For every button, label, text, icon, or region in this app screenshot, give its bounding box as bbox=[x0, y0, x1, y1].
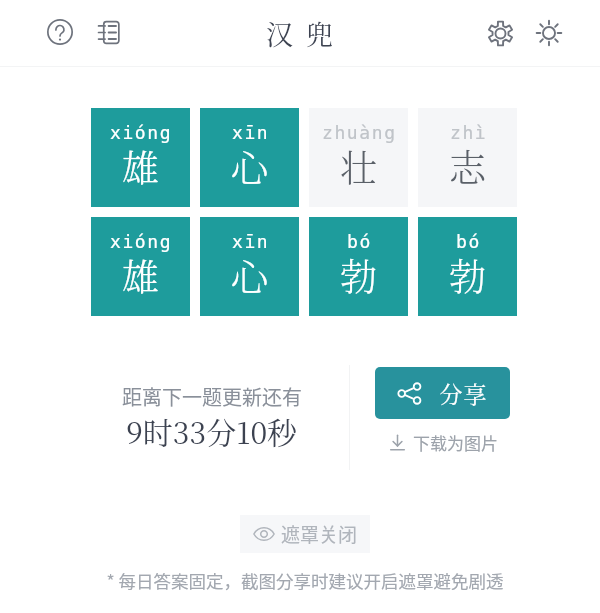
button[interactable]: Help bbox=[38, 10, 82, 54]
button[interactable]: bó bbox=[418, 217, 517, 316]
staticText: 下载为图片 bbox=[413, 430, 498, 455]
staticText: 壮 bbox=[340, 139, 377, 192]
button[interactable]: xióng bbox=[91, 108, 190, 207]
button[interactable]: xīn bbox=[200, 217, 299, 316]
staticText: 分享 bbox=[439, 377, 487, 410]
staticText: 志 bbox=[449, 139, 486, 192]
button[interactable]: Theme bbox=[527, 11, 571, 55]
staticText: xióng bbox=[110, 122, 173, 143]
button[interactable]: Settings bbox=[478, 11, 522, 55]
staticText: xīn bbox=[232, 122, 270, 143]
staticText: 9时33分10秒 bbox=[126, 409, 298, 452]
button[interactable]: 下载为图片 bbox=[389, 429, 498, 455]
staticText: xióng bbox=[110, 231, 173, 252]
staticText: 距离下一题更新还有 bbox=[122, 382, 302, 411]
staticText: zhì bbox=[450, 122, 488, 143]
staticText: 雄 bbox=[122, 248, 159, 301]
staticText: 雄 bbox=[122, 139, 159, 192]
button[interactable]: bó bbox=[309, 217, 408, 316]
staticText: 遮罩关闭 bbox=[281, 520, 358, 548]
button[interactable]: zhuàng bbox=[309, 108, 408, 207]
staticText: xīn bbox=[232, 231, 270, 252]
button[interactable]: 遮罩关闭 bbox=[240, 515, 370, 553]
button[interactable]: xīn bbox=[200, 108, 299, 207]
button[interactable]: 分享 bbox=[375, 367, 510, 419]
staticText: 勃 bbox=[449, 248, 486, 301]
staticText: 心 bbox=[231, 139, 268, 192]
button[interactable]: Answer records bbox=[88, 10, 132, 54]
staticText: bó bbox=[347, 231, 372, 252]
staticText: * 每日答案固定，截图分享时建议开启遮罩避免剧透 bbox=[5, 568, 600, 593]
staticText: 汉兜 bbox=[266, 14, 346, 53]
staticText: zhuàng bbox=[322, 122, 397, 143]
staticText: bó bbox=[456, 231, 481, 252]
staticText: 心 bbox=[231, 248, 268, 301]
button[interactable]: zhì bbox=[418, 108, 517, 207]
button[interactable]: xióng bbox=[91, 217, 190, 316]
staticText: 勃 bbox=[340, 248, 377, 301]
